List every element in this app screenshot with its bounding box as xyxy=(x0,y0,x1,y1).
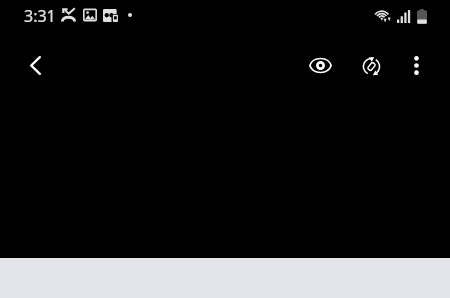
button[interactable]: Back xyxy=(13,43,57,87)
staticText: 3:31 xyxy=(24,5,56,27)
button[interactable]: Rotate screen xyxy=(349,44,393,88)
button[interactable]: More options xyxy=(394,43,438,87)
button[interactable]: Preview xyxy=(298,43,342,87)
